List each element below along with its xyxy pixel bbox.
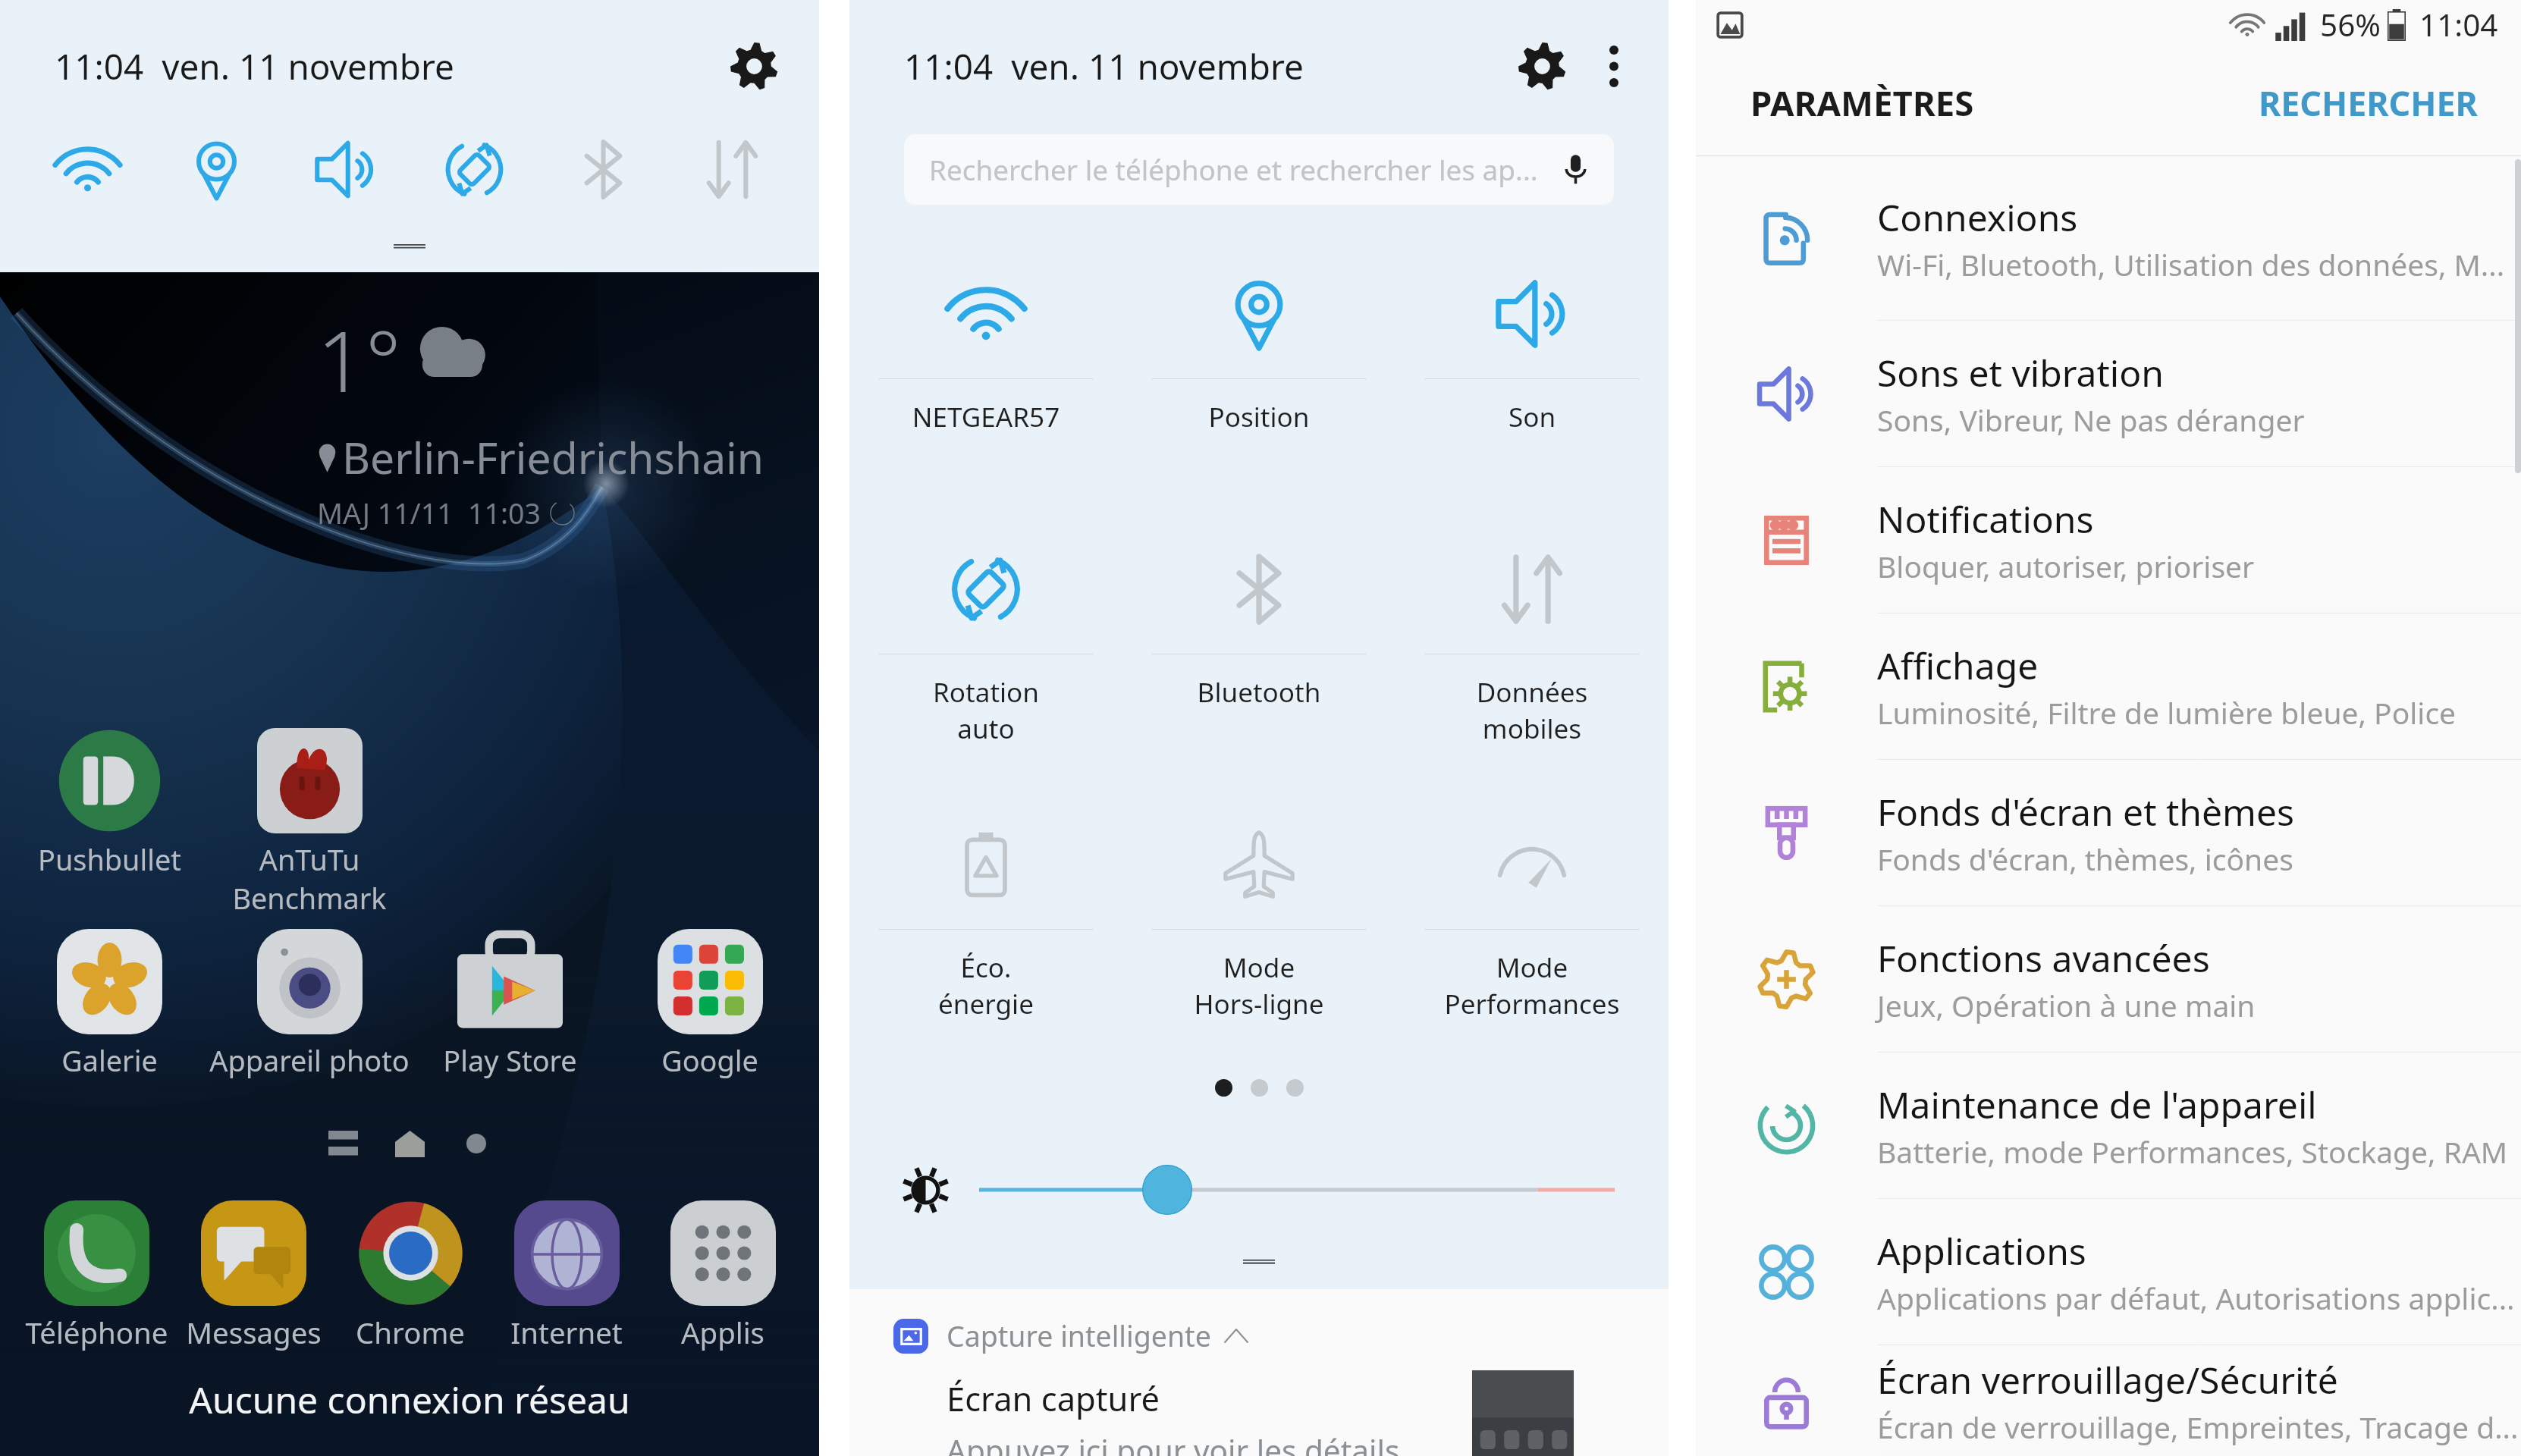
staticText: Mode Performances xyxy=(1395,949,1669,1021)
button[interactable]: Mobile data xyxy=(667,139,796,200)
button[interactable]: Fonctions avancées xyxy=(1696,907,2521,1052)
button[interactable]: Son xyxy=(1395,249,1669,524)
button[interactable]: Galerie xyxy=(9,929,209,1080)
button[interactable]: Notifications xyxy=(1696,468,2521,613)
button[interactable]: Settings xyxy=(730,42,778,90)
staticText: Téléphone xyxy=(18,1313,175,1352)
staticText: Écran de verrouillage, Empreintes, Traca… xyxy=(1877,1407,2519,1447)
staticText: Fonds d'écran, thèmes, icônes xyxy=(1877,839,2293,879)
staticText: Wi-Fi, Bluetooth, Utilisation des donnée… xyxy=(1877,244,2505,284)
staticText: Bluetooth xyxy=(1122,673,1395,710)
staticText: Mode Hors-ligne xyxy=(1122,949,1395,1021)
staticText: Google xyxy=(661,1041,758,1080)
staticText: Applications par défaut, Autorisations a… xyxy=(1877,1278,2515,1318)
button[interactable]: More options xyxy=(1596,41,1632,91)
staticText: Sons et vibration xyxy=(1877,348,2164,397)
button[interactable]: Settings xyxy=(1518,42,1566,90)
button[interactable]: Rechercher le téléphone et rechercher le… xyxy=(904,134,1614,205)
button[interactable]: Fonds d'écran et thèmes xyxy=(1696,761,2521,905)
staticText: Fonds d'écran et thèmes xyxy=(1877,787,2294,836)
staticText: MAJ 11/11 11:03 xyxy=(317,494,541,532)
button[interactable]: Auto rotate xyxy=(410,139,538,200)
staticText: Internet xyxy=(488,1313,645,1352)
button[interactable]: Location xyxy=(152,139,281,200)
staticText: Sons, Vibreur, Ne pas déranger xyxy=(1877,400,2305,440)
button[interactable]: Maintenance de l'appareil xyxy=(1696,1053,2521,1198)
staticText: Messages xyxy=(175,1313,332,1352)
button[interactable]: Applis xyxy=(645,1200,801,1352)
button[interactable]: Pushbullet xyxy=(9,728,209,879)
staticText: Jeux, Opération à une main xyxy=(1877,985,2256,1025)
button[interactable]: Téléphone xyxy=(18,1200,175,1352)
staticText: 1° xyxy=(317,302,401,416)
staticText: Maintenance de l'appareil xyxy=(1877,1080,2317,1129)
staticText: Rotation auto xyxy=(849,673,1122,746)
staticText: Berlin-Friedrichshain xyxy=(342,428,764,487)
button[interactable]: Appareil photo xyxy=(209,929,410,1080)
button[interactable]: Internet xyxy=(488,1200,645,1352)
staticText: Son xyxy=(1395,398,1669,435)
button[interactable]: Rotation auto xyxy=(849,524,1122,799)
button[interactable]: Affichage xyxy=(1696,614,2521,759)
staticText: Écran verrouillage/Sécurité xyxy=(1877,1355,2338,1404)
button[interactable]: Écran verrouillage/Sécurité xyxy=(1696,1346,2521,1456)
button[interactable]: AnTuTu Benchmark xyxy=(209,728,410,918)
button[interactable]: Bluetooth xyxy=(1122,524,1395,799)
staticText: NETGEAR57 xyxy=(849,398,1122,435)
button[interactable]: Messages xyxy=(175,1200,332,1352)
button[interactable]: Mode Hors-ligne xyxy=(1122,799,1395,1075)
staticText: Données mobiles xyxy=(1395,673,1669,746)
button[interactable]: Play Store xyxy=(410,929,610,1080)
staticText: Notifications xyxy=(1877,494,2094,544)
staticText: Play Store xyxy=(443,1041,577,1080)
button[interactable]: Position xyxy=(1122,249,1395,524)
staticText: Fonctions avancées xyxy=(1877,934,2210,983)
button[interactable]: Éco. énergie xyxy=(849,799,1122,1075)
staticText: Aucune connexion réseau xyxy=(0,1375,819,1424)
button[interactable]: Chrome xyxy=(332,1200,488,1352)
button[interactable]: Sound xyxy=(281,139,410,200)
staticText: Appuyez ici pour voir les détails. xyxy=(947,1429,1408,1456)
button[interactable]: NETGEAR57 xyxy=(849,249,1122,524)
staticText: Galerie xyxy=(61,1041,158,1080)
staticText: Pushbullet xyxy=(38,840,181,879)
staticText: Luminosité, Filtre de lumière bleue, Pol… xyxy=(1877,692,2457,733)
button[interactable]: Bluetooth xyxy=(538,139,667,200)
staticText: Capture intelligente xyxy=(947,1316,1211,1355)
button[interactable]: Home xyxy=(376,1114,443,1173)
staticText: PARAMÈTRES xyxy=(1750,79,1974,126)
staticText: Éco. énergie xyxy=(849,949,1122,1021)
staticText: Écran capturé xyxy=(947,1376,1160,1420)
button[interactable]: Sons et vibration xyxy=(1696,322,2521,466)
button[interactable]: Connexions xyxy=(1696,157,2521,320)
staticText: Connexions xyxy=(1877,193,2078,242)
staticText: Appareil photo xyxy=(209,1041,410,1080)
button[interactable]: Applications xyxy=(1696,1200,2521,1345)
button[interactable]: RECHERCHER xyxy=(2254,68,2482,137)
button[interactable]: Capture intelligente xyxy=(893,1316,1632,1355)
button[interactable]: Recents xyxy=(309,1114,376,1173)
staticText: RECHERCHER xyxy=(2259,80,2478,126)
staticText: Chrome xyxy=(332,1313,488,1352)
staticText: 11:04 ven. 11 novembre xyxy=(55,42,454,90)
staticText: Position xyxy=(1122,398,1395,435)
staticText: AnTuTu Benchmark xyxy=(232,840,387,918)
staticText: Applications xyxy=(1877,1226,2086,1276)
staticText: 56% xyxy=(2320,4,2381,45)
button[interactable]: Données mobiles xyxy=(1395,524,1669,799)
button[interactable]: Back xyxy=(443,1114,510,1173)
button[interactable]: Mode Performances xyxy=(1395,799,1669,1075)
staticText: Applis xyxy=(645,1313,801,1352)
button[interactable]: Google xyxy=(610,929,810,1080)
staticText: Affichage xyxy=(1877,641,2039,690)
staticText: Rechercher le téléphone et rechercher le… xyxy=(929,151,1549,189)
staticText: Batterie, mode Performances, Stockage, R… xyxy=(1877,1131,2508,1172)
staticText: 11:04 ven. 11 novembre xyxy=(904,42,1304,90)
staticText: 11:04 xyxy=(2419,4,2498,45)
staticText: Bloquer, autoriser, prioriser xyxy=(1877,546,2255,586)
button[interactable]: Wi-Fi xyxy=(23,139,152,200)
